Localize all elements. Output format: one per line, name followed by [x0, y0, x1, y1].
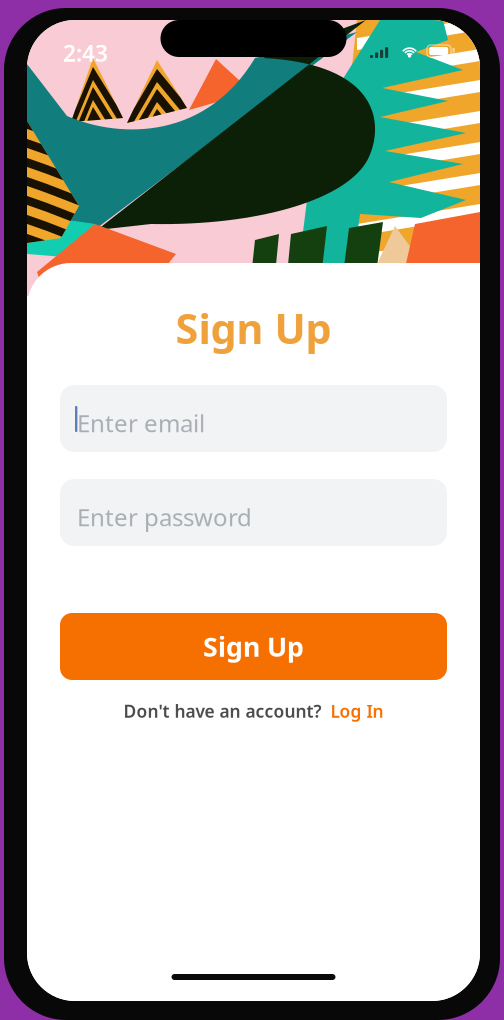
staticText: Sign Up: [203, 629, 304, 664]
button[interactable]: Sign Up: [60, 613, 447, 680]
staticText: 2:43: [63, 38, 108, 68]
staticText: Sign Up: [175, 301, 331, 355]
staticText: Don't have an account?: [123, 699, 321, 722]
staticText: Log In: [330, 699, 383, 722]
staticText: Enter email: [77, 407, 205, 439]
button[interactable]: Log In: [330, 699, 383, 722]
staticText: Enter password: [77, 501, 252, 533]
